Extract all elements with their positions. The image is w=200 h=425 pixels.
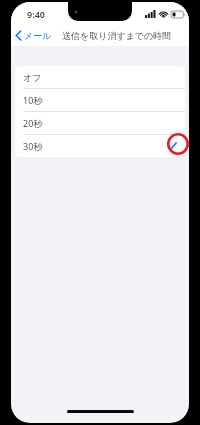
staticText: 10秒 — [23, 94, 43, 106]
other: Selected — [167, 141, 177, 151]
staticText: 30秒 — [23, 140, 43, 152]
staticText: 9:40 — [27, 8, 45, 20]
staticText: 送信を取り消すまでの時間 — [62, 30, 172, 41]
button[interactable]: 30秒 — [15, 135, 185, 157]
button[interactable]: 20秒 — [15, 112, 185, 135]
staticText: メール — [24, 30, 52, 41]
staticText: 20秒 — [23, 117, 43, 129]
button[interactable]: メール — [11, 28, 56, 43]
button[interactable]: オフ — [15, 66, 185, 89]
staticText: オフ — [23, 72, 42, 83]
button[interactable]: 10秒 — [15, 89, 185, 112]
